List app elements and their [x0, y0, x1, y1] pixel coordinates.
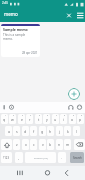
staticText: t: [38, 117, 40, 122]
staticText: k: [67, 129, 69, 134]
staticText: ?123: [3, 156, 10, 160]
staticText: .: [61, 155, 63, 160]
staticText: Search: [73, 156, 82, 160]
button[interactable]: v: [39, 139, 46, 150]
button[interactable]: [74, 139, 85, 150]
button[interactable]: .: [58, 152, 66, 163]
button[interactable]: o: [69, 114, 76, 124]
staticText: u: [54, 117, 57, 122]
button[interactable]: m: [64, 139, 71, 150]
staticText: x: [25, 142, 27, 147]
button[interactable]: g: [39, 126, 46, 136]
button[interactable]: Sample memo: [1, 24, 40, 57]
button[interactable]: y: [43, 114, 50, 124]
staticText: s: [16, 129, 18, 134]
staticText: r: [29, 117, 31, 122]
staticText: z: [16, 142, 18, 147]
button[interactable]: n: [56, 139, 63, 150]
button[interactable]: h: [47, 126, 54, 136]
staticText: o: [71, 117, 74, 122]
button[interactable]: k: [64, 126, 71, 136]
staticText: 0: [81, 114, 83, 117]
staticText: a: [8, 129, 10, 134]
staticText: This is a sample memo.: [3, 33, 26, 41]
button[interactable]: e: [18, 114, 25, 124]
button[interactable]: z: [13, 139, 20, 150]
staticText: j: [59, 129, 60, 134]
button[interactable]: Search: [70, 152, 84, 163]
button[interactable]: u: [52, 114, 59, 124]
button[interactable]: a: [5, 126, 12, 136]
button[interactable]: b: [47, 139, 54, 150]
button[interactable]: q: [1, 114, 8, 124]
staticText: l: [76, 129, 77, 134]
staticText: c: [33, 142, 35, 147]
staticText: 2: [13, 114, 15, 117]
staticText: p: [79, 117, 82, 122]
staticText: Sample memo: [3, 27, 28, 32]
button[interactable]: [68, 88, 80, 100]
staticText: 4: [30, 114, 32, 117]
staticText: f: [33, 129, 35, 134]
staticText: ,: [18, 155, 20, 160]
staticText: g: [41, 129, 44, 134]
button[interactable]: d: [22, 126, 29, 136]
staticText: q: [3, 117, 6, 122]
staticText: y: [46, 117, 48, 122]
button[interactable]: r: [26, 114, 33, 124]
staticText: m: [66, 142, 70, 147]
button[interactable]: w: [9, 114, 16, 124]
button[interactable]: j: [56, 126, 63, 136]
button[interactable]: English (US): [25, 152, 56, 163]
button[interactable]: l: [73, 126, 80, 136]
staticText: n: [58, 142, 61, 147]
button[interactable]: [1, 139, 12, 150]
button[interactable]: c: [30, 139, 37, 150]
button[interactable]: ?123: [1, 152, 12, 163]
staticText: d: [24, 129, 27, 134]
staticText: memo: [4, 11, 18, 17]
staticText: 7: [56, 114, 58, 117]
staticText: 28 apr 2021: [22, 51, 38, 55]
button[interactable]: f: [30, 126, 37, 136]
staticText: v: [42, 142, 44, 147]
button[interactable]: ,: [15, 152, 23, 163]
button[interactable]: p: [77, 114, 84, 124]
button[interactable]: t: [35, 114, 42, 124]
button[interactable]: s: [13, 126, 20, 136]
staticText: 1: [5, 114, 7, 117]
staticText: 9: [73, 114, 75, 117]
staticText: e: [21, 117, 23, 122]
staticText: w: [11, 117, 14, 122]
staticText: h: [49, 129, 52, 134]
button[interactable]: x: [22, 139, 29, 150]
staticText: 5: [39, 114, 41, 117]
staticText: i: [63, 117, 64, 122]
staticText: 3: [22, 114, 24, 117]
staticText: 8: [64, 114, 66, 117]
staticText: English (US): [34, 156, 48, 159]
staticText: 6: [47, 114, 49, 117]
button[interactable]: i: [60, 114, 67, 124]
staticText: 2:45: [2, 1, 8, 5]
staticText: b: [49, 142, 52, 147]
